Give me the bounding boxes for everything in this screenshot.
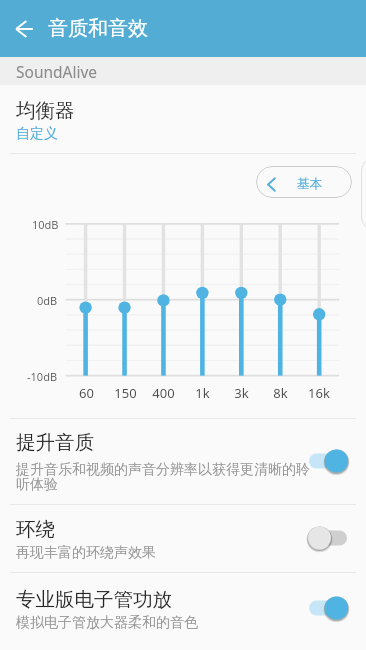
staticText: 再现丰富的环绕声效果	[16, 544, 316, 562]
button[interactable]: Off	[306, 524, 354, 552]
staticText: 0dB	[37, 293, 58, 308]
button[interactable]: On	[306, 594, 354, 622]
button[interactable]: 环绕	[0, 505, 366, 573]
staticText: 10dB	[32, 217, 59, 232]
staticText: 专业版电子管功放	[16, 587, 172, 612]
staticText: 基本	[297, 176, 322, 192]
staticText: 环绕	[16, 517, 55, 542]
button[interactable]: 基本	[256, 166, 352, 198]
staticText: 8k	[273, 384, 288, 402]
staticText: 均衡器	[16, 98, 75, 123]
staticText: 3k	[234, 384, 249, 402]
staticText: 音质和音效	[48, 16, 148, 41]
staticText: 自定义	[16, 125, 58, 143]
staticText: 1k	[195, 384, 210, 402]
staticText: 16k	[308, 384, 330, 402]
staticText: 150	[114, 384, 137, 402]
staticText: SoundAlive	[16, 61, 98, 82]
button[interactable]: 均衡器	[0, 85, 366, 153]
staticText: 提升音质	[16, 430, 94, 455]
staticText: 模拟电子管放大器柔和的音色	[16, 614, 316, 632]
staticText: 60	[79, 384, 94, 402]
button[interactable]: 专业版电子管功放	[0, 573, 366, 650]
staticText: 提升音乐和视频的声音分辨率以获得更清晰的聆听体验	[16, 461, 316, 493]
button[interactable]: On	[306, 447, 354, 475]
staticText: -10dB	[27, 369, 58, 384]
staticText: 400	[152, 384, 175, 402]
button[interactable]: 提升音质	[0, 419, 366, 504]
button[interactable]: Back	[0, 0, 48, 57]
